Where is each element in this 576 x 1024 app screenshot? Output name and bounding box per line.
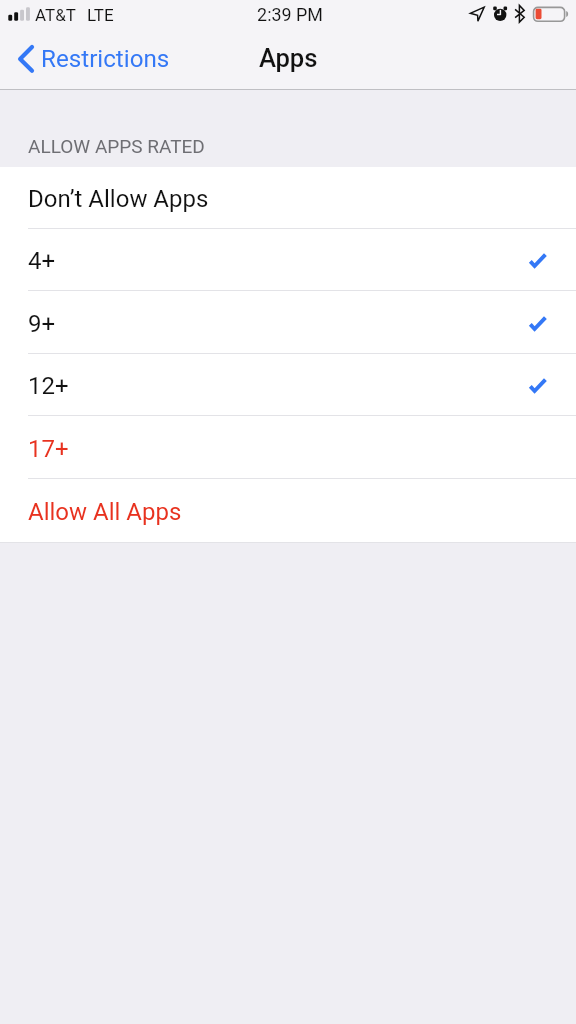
staticText: 2:39 PM bbox=[2, 4, 576, 25]
button[interactable]: Don’t Allow Apps bbox=[0, 167, 576, 229]
staticText: LTE bbox=[87, 5, 114, 25]
staticText: 17+ bbox=[28, 435, 69, 463]
button[interactable]: 17+ bbox=[0, 416, 576, 479]
staticText: Restrictions bbox=[41, 45, 170, 73]
other: Selected bbox=[525, 375, 547, 395]
button[interactable]: 12+ bbox=[0, 354, 576, 416]
button[interactable]: 4+ bbox=[0, 229, 576, 291]
staticText: Apps bbox=[259, 43, 318, 73]
staticText: Allow All Apps bbox=[28, 498, 182, 526]
button[interactable]: 9+ bbox=[0, 291, 576, 354]
staticText: AT&T bbox=[35, 5, 76, 25]
button[interactable]: Allow All Apps bbox=[0, 479, 576, 542]
staticText: Don’t Allow Apps bbox=[28, 185, 209, 213]
other: Selected bbox=[525, 313, 547, 333]
button[interactable]: Restrictions bbox=[0, 28, 182, 90]
staticText: ALLOW APPS RATED bbox=[28, 135, 205, 157]
other: Selected bbox=[525, 250, 547, 270]
staticText: 12+ bbox=[28, 372, 69, 400]
staticText: 4+ bbox=[28, 247, 56, 275]
staticText: 9+ bbox=[28, 310, 56, 338]
